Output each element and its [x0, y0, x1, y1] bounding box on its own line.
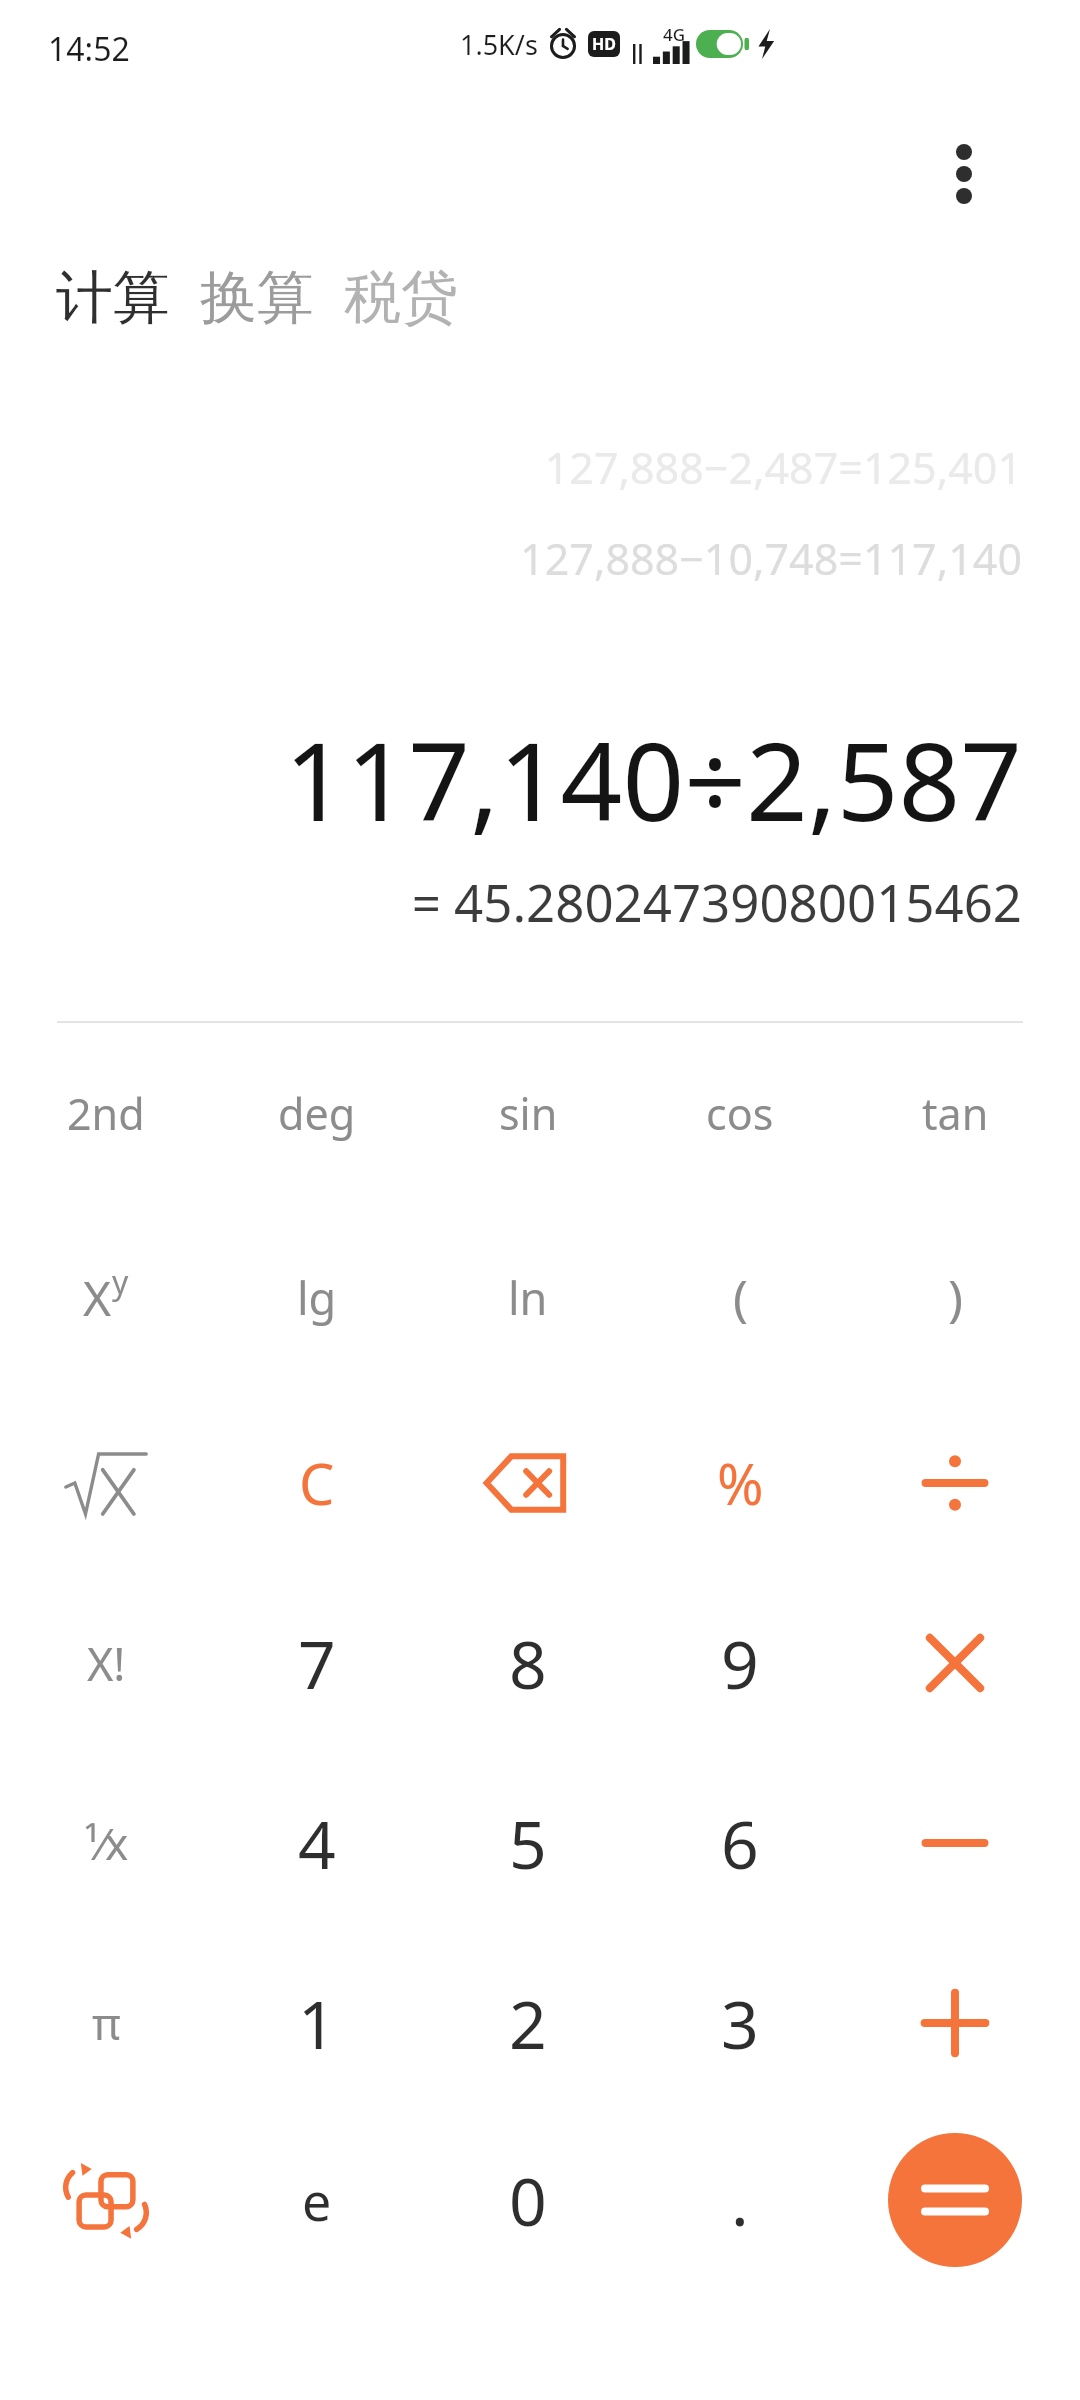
button[interactable]: Multiply	[852, 1574, 1058, 1752]
button[interactable]: 1	[214, 1934, 420, 2112]
staticText: 127,888−10,748=117,140	[520, 529, 1022, 588]
button[interactable]: C	[214, 1394, 420, 1572]
button[interactable]: deg	[214, 1024, 420, 1202]
button[interactable]: 2nd	[3, 1024, 209, 1202]
button[interactable]: cos	[637, 1024, 843, 1202]
staticText: cos	[706, 1084, 774, 1143]
button[interactable]: 3	[637, 1934, 843, 2112]
staticText: 6	[721, 1798, 759, 1888]
staticText: 4	[298, 1798, 336, 1888]
button[interactable]: Convert	[3, 2111, 209, 2289]
button[interactable]: )	[852, 1208, 1058, 1386]
staticText: 127,888−2,487=125,401	[544, 438, 1022, 497]
staticText: C	[299, 1445, 335, 1521]
button[interactable]: Reciprocal	[3, 1754, 209, 1932]
staticText: sin	[499, 1084, 558, 1143]
button[interactable]: More options	[908, 118, 1020, 230]
button[interactable]: Add	[852, 1934, 1058, 2112]
staticText: )	[948, 1263, 963, 1331]
staticText: e	[302, 2165, 332, 2236]
staticText: 换算	[200, 262, 314, 334]
staticText: .	[731, 2155, 749, 2245]
staticText: 2	[509, 1978, 547, 2068]
button[interactable]: Divide	[852, 1394, 1058, 1572]
button[interactable]: e	[214, 2111, 420, 2289]
staticText: ¹⁄x	[84, 1813, 129, 1873]
staticText: %	[717, 1445, 764, 1521]
button[interactable]: Power	[3, 1208, 209, 1386]
button[interactable]: ln	[425, 1208, 631, 1386]
button[interactable]: .	[637, 2111, 843, 2289]
staticText: 1.5K/s	[460, 26, 538, 63]
staticText: y	[112, 1260, 129, 1304]
button[interactable]: 5	[425, 1754, 631, 1932]
button[interactable]: Backspace	[425, 1394, 631, 1572]
staticText: lg	[297, 1267, 337, 1328]
staticText: X	[83, 1265, 112, 1330]
staticText: 2nd	[67, 1084, 145, 1143]
button[interactable]: Square root	[3, 1394, 209, 1572]
staticText: X!	[87, 1633, 126, 1694]
staticText: 1	[298, 1978, 336, 2068]
staticText: tan	[922, 1084, 989, 1143]
staticText: π	[92, 1993, 121, 2053]
staticText: 9	[721, 1618, 759, 1708]
button[interactable]: 计算	[46, 252, 180, 344]
staticText: 3	[721, 1978, 759, 2068]
staticText: 0	[509, 2155, 547, 2245]
button[interactable]: 6	[637, 1754, 843, 1932]
staticText: = 45.28024739080015462	[411, 867, 1022, 936]
button[interactable]: 0	[425, 2111, 631, 2289]
button[interactable]: x!	[3, 1574, 209, 1752]
button[interactable]: Equals	[852, 2111, 1058, 2289]
button[interactable]: lg	[214, 1208, 420, 1386]
staticText: 5	[509, 1798, 547, 1888]
staticText: 117,140÷2,587	[284, 706, 1022, 853]
staticText: ln	[508, 1267, 548, 1328]
staticText: 4G	[663, 23, 686, 46]
button[interactable]: %	[637, 1394, 843, 1572]
button[interactable]: sin	[425, 1024, 631, 1202]
button[interactable]: 8	[425, 1574, 631, 1752]
staticText: HD	[592, 33, 616, 55]
staticText: 税贷	[344, 262, 458, 334]
button[interactable]: 4	[214, 1754, 420, 1932]
staticText: 14:52	[48, 27, 130, 71]
button[interactable]: (	[637, 1208, 843, 1386]
button[interactable]: tan	[852, 1024, 1058, 1202]
staticText: 计算	[56, 262, 170, 334]
staticText: deg	[278, 1084, 356, 1143]
staticText: (	[733, 1263, 748, 1331]
button[interactable]: pi	[3, 1934, 209, 2112]
button[interactable]: 9	[637, 1574, 843, 1752]
staticText: 7	[298, 1618, 336, 1708]
button[interactable]: 税贷	[334, 252, 468, 344]
button[interactable]: Subtract	[852, 1754, 1058, 1932]
button[interactable]: 2	[425, 1934, 631, 2112]
staticText: 8	[509, 1618, 547, 1708]
button[interactable]: 7	[214, 1574, 420, 1752]
button[interactable]: 换算	[190, 252, 324, 344]
